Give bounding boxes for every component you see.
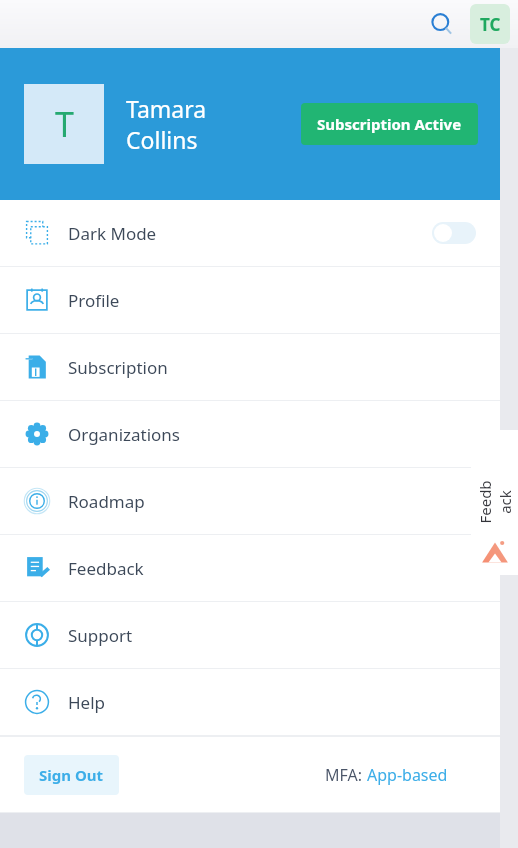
button[interactable]: Roadmap bbox=[0, 468, 500, 534]
staticText: Roadmap bbox=[68, 490, 145, 513]
button[interactable]: Support bbox=[0, 602, 500, 668]
staticText: Tamara Collins bbox=[126, 93, 256, 156]
button[interactable]: Sign Out bbox=[24, 755, 119, 795]
button[interactable]: Dark Mode bbox=[0, 200, 500, 266]
button[interactable]: Dark mode toggle bbox=[432, 222, 476, 244]
staticText: Dark Mode bbox=[68, 222, 157, 245]
button[interactable]: Feedback bbox=[471, 430, 518, 575]
button[interactable]: Profile bbox=[0, 267, 500, 333]
staticText: Help bbox=[68, 691, 106, 714]
button[interactable]: Feedback bbox=[0, 535, 500, 601]
staticText: App-based bbox=[367, 764, 448, 786]
button[interactable]: Subscription Active bbox=[301, 103, 478, 145]
staticText: Subscription bbox=[68, 356, 168, 379]
staticText: Feedback bbox=[68, 557, 144, 580]
staticText: Feedback bbox=[474, 478, 514, 525]
staticText: Support bbox=[68, 624, 133, 647]
button[interactable]: Search bbox=[424, 6, 460, 42]
staticText: T bbox=[55, 101, 74, 147]
button[interactable]: Organizations bbox=[0, 401, 500, 467]
staticText: Sign Out bbox=[39, 765, 104, 785]
button[interactable]: Subscription bbox=[0, 334, 500, 400]
staticText: Organizations bbox=[68, 423, 180, 446]
staticText: Subscription Active bbox=[317, 114, 462, 134]
staticText: MFA: bbox=[325, 764, 367, 786]
button[interactable]: TC bbox=[470, 4, 510, 44]
button[interactable]: Help bbox=[0, 669, 500, 735]
button[interactable]: App-based bbox=[367, 764, 448, 786]
staticText: TC bbox=[480, 13, 501, 36]
staticText: Profile bbox=[68, 289, 120, 312]
